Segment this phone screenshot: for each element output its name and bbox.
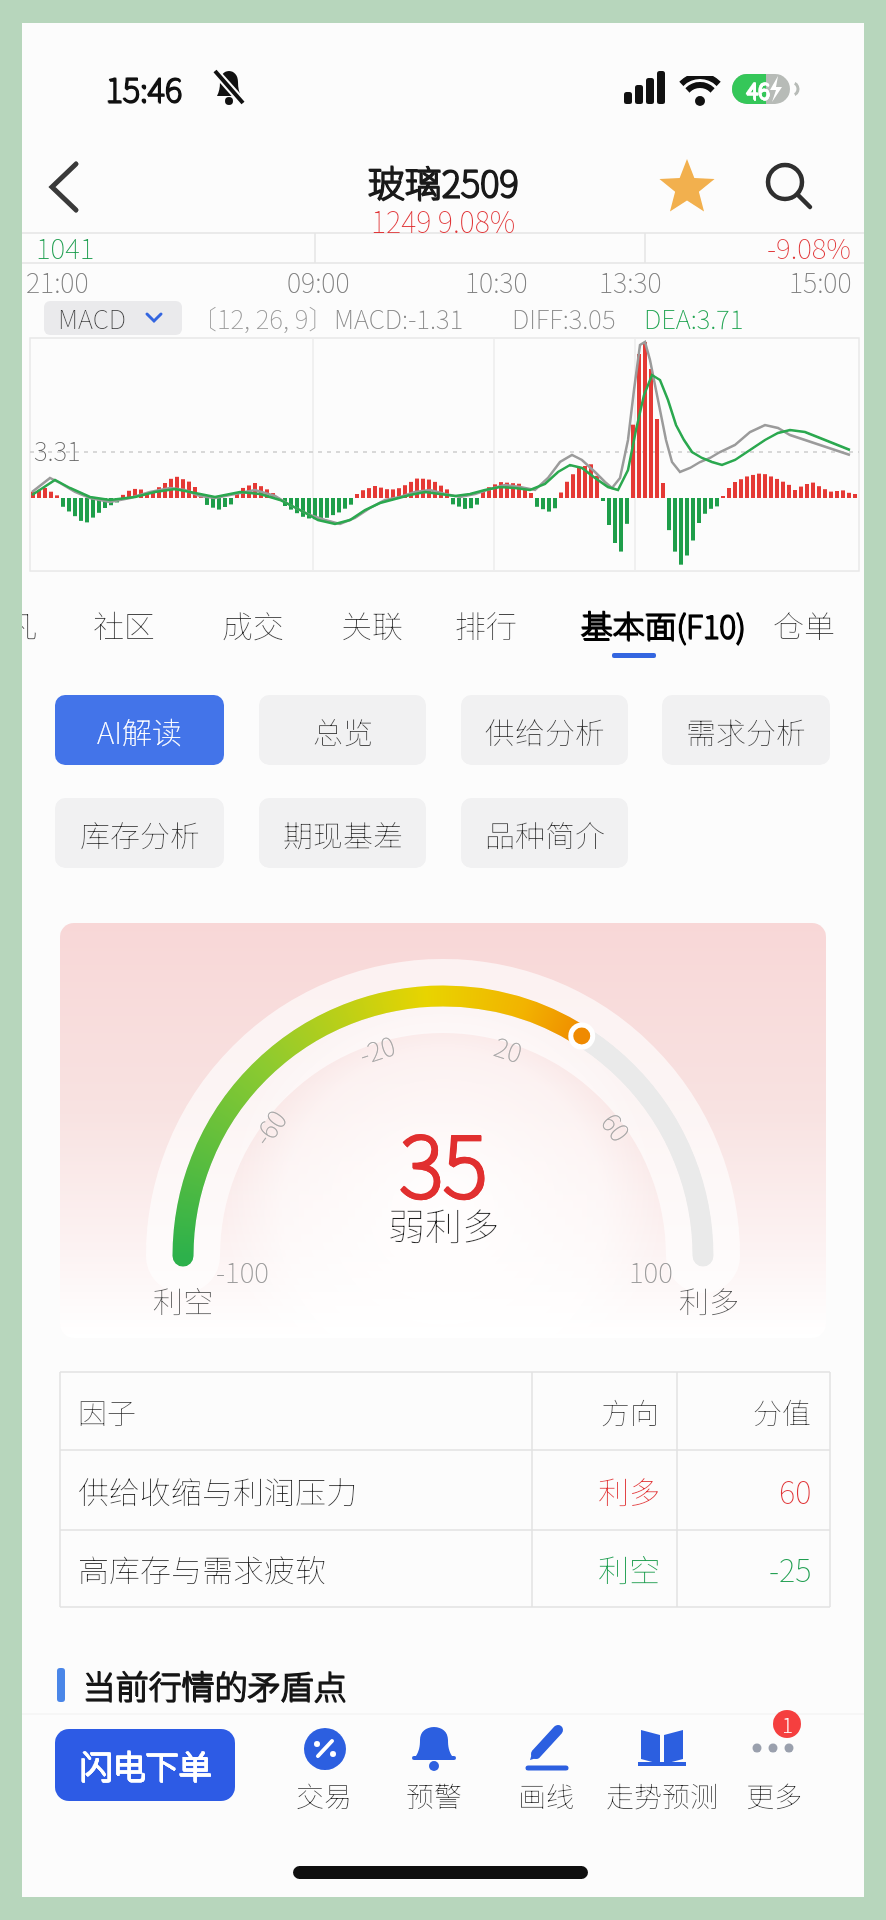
button[interactable] — [412, 1724, 456, 1772]
button[interactable] — [431, 596, 541, 652]
staticText: 关联 — [341, 602, 403, 647]
button[interactable]: 库存分析 — [55, 798, 224, 868]
staticText: AI解读 — [97, 709, 182, 752]
staticText: 画线 — [518, 1775, 575, 1816]
staticText: 高库存与需求疲软 — [78, 1546, 326, 1591]
staticText: 基本面(F10) — [581, 602, 747, 648]
staticText: 基本面(F10) — [580, 601, 746, 647]
staticText: -25 — [769, 1546, 812, 1591]
staticText: 35 — [400, 1101, 488, 1223]
button[interactable]: 需求分析 — [662, 695, 830, 765]
button[interactable] — [749, 596, 859, 652]
staticText: 13:30 — [599, 262, 662, 301]
staticText: 闪电下单 — [79, 1741, 211, 1789]
staticText: 基本面(F10) — [581, 602, 747, 648]
staticText: 21:00 — [26, 262, 89, 301]
staticText: 方向 — [601, 1390, 660, 1432]
staticText: 35 — [400, 1101, 488, 1223]
staticText: 玻璃2509 — [368, 155, 520, 209]
staticText: 20 — [490, 1027, 528, 1071]
staticText: 利空 — [153, 1278, 213, 1321]
button[interactable] — [317, 596, 427, 652]
staticText: 仓单 — [773, 602, 835, 647]
staticText: 供给收缩与利润压力 — [78, 1468, 357, 1513]
staticText: 交易 — [296, 1775, 353, 1816]
staticText: 玻璃2509 — [367, 154, 519, 208]
button[interactable]: 总览 — [259, 695, 426, 765]
staticText: 〔12, 26, 9〕 — [191, 299, 335, 337]
button[interactable] — [303, 1727, 347, 1771]
staticText: 成交 — [222, 602, 284, 647]
staticText: 60 — [779, 1468, 812, 1513]
button[interactable] — [553, 596, 773, 652]
staticText: 供给分析 — [485, 709, 605, 752]
staticText: 1249 9.08% — [371, 199, 516, 241]
staticText: 闪电下单 — [80, 1742, 212, 1790]
staticText: 因子 — [78, 1390, 137, 1432]
button[interactable] — [524, 1722, 570, 1772]
staticText: DEA:3.71 — [644, 299, 744, 337]
button[interactable] — [638, 1724, 686, 1770]
staticText: 当前行情的矛盾点 — [83, 1661, 347, 1709]
staticText: 品种简介 — [485, 812, 605, 855]
staticText: 3.31 — [34, 431, 81, 469]
staticText: 35 — [400, 1100, 488, 1222]
staticText: MACD:-1.31 — [334, 299, 464, 337]
staticText: -60 — [243, 1101, 295, 1153]
staticText: 期现基差 — [283, 812, 403, 855]
staticText: 1041 — [36, 227, 95, 268]
button[interactable] — [69, 596, 179, 652]
staticText: 当前行情的矛盾点 — [83, 1662, 347, 1710]
staticText: 当前行情的矛盾点 — [83, 1662, 347, 1710]
staticText: 走势预测 — [606, 1775, 719, 1816]
staticText: MACD — [58, 299, 126, 337]
staticText: 15:46 — [106, 64, 183, 112]
staticText: 玻璃2509 — [368, 154, 520, 208]
staticText: 利空 — [598, 1546, 660, 1591]
staticText: 分值 — [753, 1390, 812, 1432]
staticText: 利多 — [679, 1278, 739, 1321]
button[interactable] — [60, 923, 826, 1338]
button[interactable]: 品种简介 — [461, 798, 628, 868]
staticText: 预警 — [406, 1775, 463, 1816]
staticText: DIFF:3.05 — [512, 299, 616, 337]
staticText: 46 — [747, 74, 770, 106]
staticText: 利多 — [598, 1468, 660, 1513]
staticText: 15:00 — [789, 262, 852, 301]
staticText: 1 — [782, 1709, 793, 1739]
staticText: 总览 — [313, 709, 373, 752]
button[interactable]: AI解读 — [55, 695, 224, 765]
button[interactable] — [745, 1722, 825, 1772]
staticText: 46 — [747, 73, 770, 105]
staticText: 当前行情的矛盾点 — [82, 1661, 346, 1709]
staticText: -9.08% — [767, 227, 851, 268]
button[interactable] — [198, 596, 308, 652]
staticText: 15:46 — [106, 65, 183, 113]
button[interactable]: 闪电下单 — [55, 1729, 235, 1801]
staticText: 46 — [747, 74, 770, 106]
button[interactable]: 期现基差 — [259, 798, 426, 868]
staticText: 09:00 — [287, 262, 350, 301]
staticText: 46 — [746, 73, 769, 105]
staticText: 基本面(F10) — [581, 601, 747, 647]
staticText: -100 — [216, 1251, 269, 1292]
staticText: 10:30 — [465, 262, 528, 301]
button[interactable] — [44, 301, 182, 335]
staticText: 弱利多 — [388, 1197, 499, 1251]
staticText: 15:46 — [106, 65, 183, 113]
staticText: -20 — [354, 1025, 400, 1073]
staticText: 100 — [629, 1251, 673, 1292]
staticText: 闪电下单 — [80, 1742, 212, 1790]
staticText: 社区 — [93, 602, 155, 647]
staticText: 凡 — [22, 602, 37, 647]
staticText: 排行 — [455, 602, 517, 647]
staticText: 35 — [399, 1100, 487, 1222]
staticText: 需求分析 — [686, 709, 806, 752]
staticText: 60 — [593, 1104, 641, 1149]
staticText: 15:46 — [105, 64, 182, 112]
staticText: 闪电下单 — [80, 1741, 212, 1789]
staticText: 更多 — [746, 1775, 803, 1816]
staticText: 库存分析 — [80, 812, 200, 855]
staticText: 玻璃2509 — [368, 155, 520, 209]
button[interactable]: 供给分析 — [461, 695, 628, 765]
